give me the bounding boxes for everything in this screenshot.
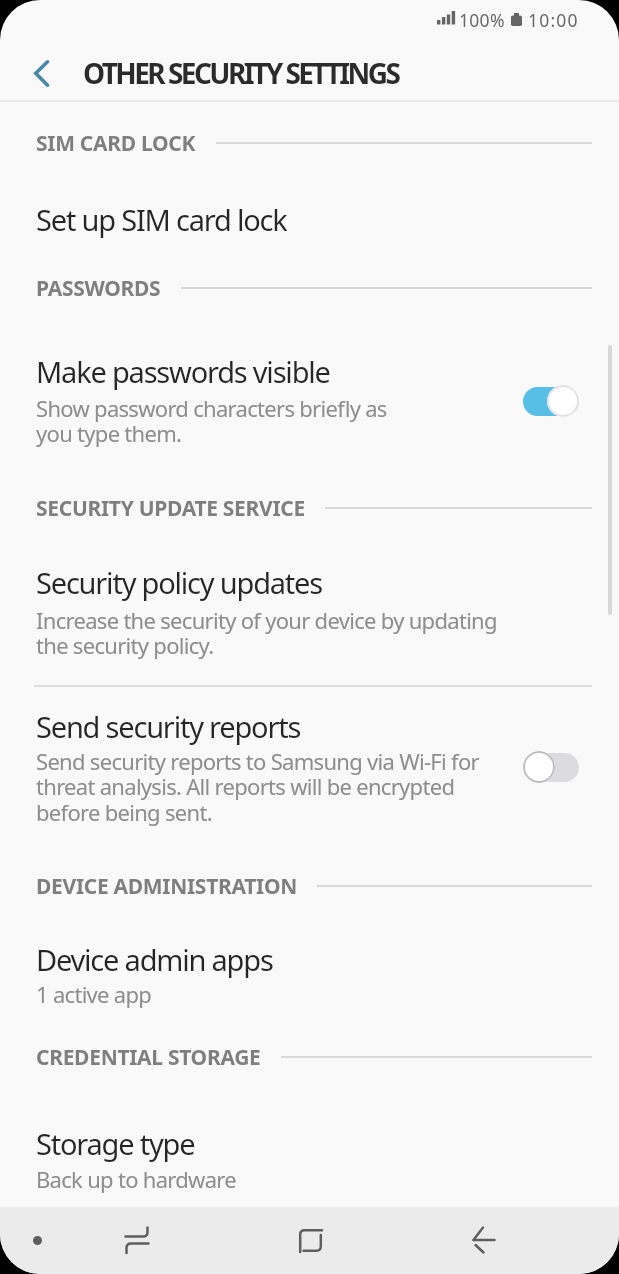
staticText: Set up SIM card lock xyxy=(36,200,287,239)
staticText: Increase the security of your device by … xyxy=(36,605,497,661)
staticText: SIM CARD LOCK xyxy=(36,129,196,158)
staticText: Storage type xyxy=(36,1124,195,1163)
staticText: Send security reports to Samsung via Wi-… xyxy=(36,746,479,828)
staticText: Make passwords visible xyxy=(36,352,330,391)
staticText: Show password characters briefly as you … xyxy=(36,393,387,449)
button[interactable] xyxy=(14,50,68,96)
staticText: Device admin apps xyxy=(36,940,273,979)
staticText: Security policy updates xyxy=(36,563,322,602)
button[interactable]: Set up SIM card lock xyxy=(0,188,619,254)
staticText: 100% xyxy=(459,8,505,32)
staticText: SECURITY UPDATE SERVICE xyxy=(36,494,305,523)
staticText: Send security reports xyxy=(36,707,301,746)
button[interactable] xyxy=(109,1212,165,1268)
staticText: CREDENTIAL STORAGE xyxy=(36,1043,261,1072)
button[interactable]: Make passwords visible xyxy=(0,340,619,466)
staticText: Back up to hardware xyxy=(36,1164,236,1194)
button[interactable]: Send security reports xyxy=(0,700,619,840)
button[interactable] xyxy=(33,1236,42,1245)
button[interactable] xyxy=(456,1212,512,1268)
staticText: OTHER SECURITY SETTINGS xyxy=(83,54,399,92)
button[interactable]: Device admin apps xyxy=(0,935,619,1018)
staticText: 10:00 xyxy=(528,8,579,32)
button[interactable] xyxy=(282,1212,338,1268)
staticText: 1 active app xyxy=(36,979,152,1009)
staticText: DEVICE ADMINISTRATION xyxy=(36,872,297,901)
staticText: PASSWORDS xyxy=(36,274,161,303)
button[interactable]: Storage type xyxy=(0,1121,619,1202)
button[interactable]: Security policy updates xyxy=(0,556,619,670)
